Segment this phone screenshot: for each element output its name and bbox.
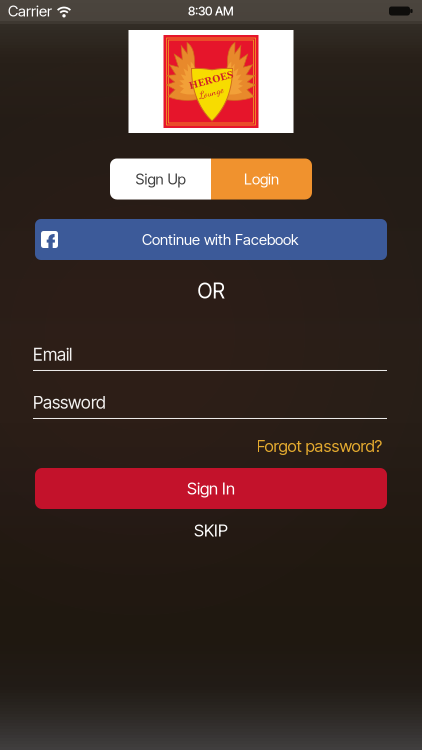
staticText: Sign Up [135,170,185,188]
staticText: Forgot password? [256,436,382,456]
button[interactable]: Sign Up [110,158,211,199]
button[interactable]: Sign In [35,468,387,509]
button[interactable]: Login [211,158,312,199]
staticText: Sign In [187,478,235,499]
staticText: OR [197,278,224,303]
button[interactable]: Forgot password? [32,436,382,456]
button[interactable]: Email [33,344,387,371]
button[interactable]: SKIP [194,520,228,541]
staticText: Password [33,392,106,413]
staticText: SKIP [194,520,228,541]
staticText: Login [244,170,279,188]
staticText: Continue with Facebook [142,230,298,249]
staticText: Lounge [198,87,223,98]
staticText: Carrier [8,2,52,20]
staticText: HEROES [188,74,233,87]
staticText: Email [33,344,72,365]
button[interactable]: Password [33,392,387,419]
button[interactable]: Continue with Facebook [35,219,387,260]
staticText: 8:30 AM [188,3,234,18]
